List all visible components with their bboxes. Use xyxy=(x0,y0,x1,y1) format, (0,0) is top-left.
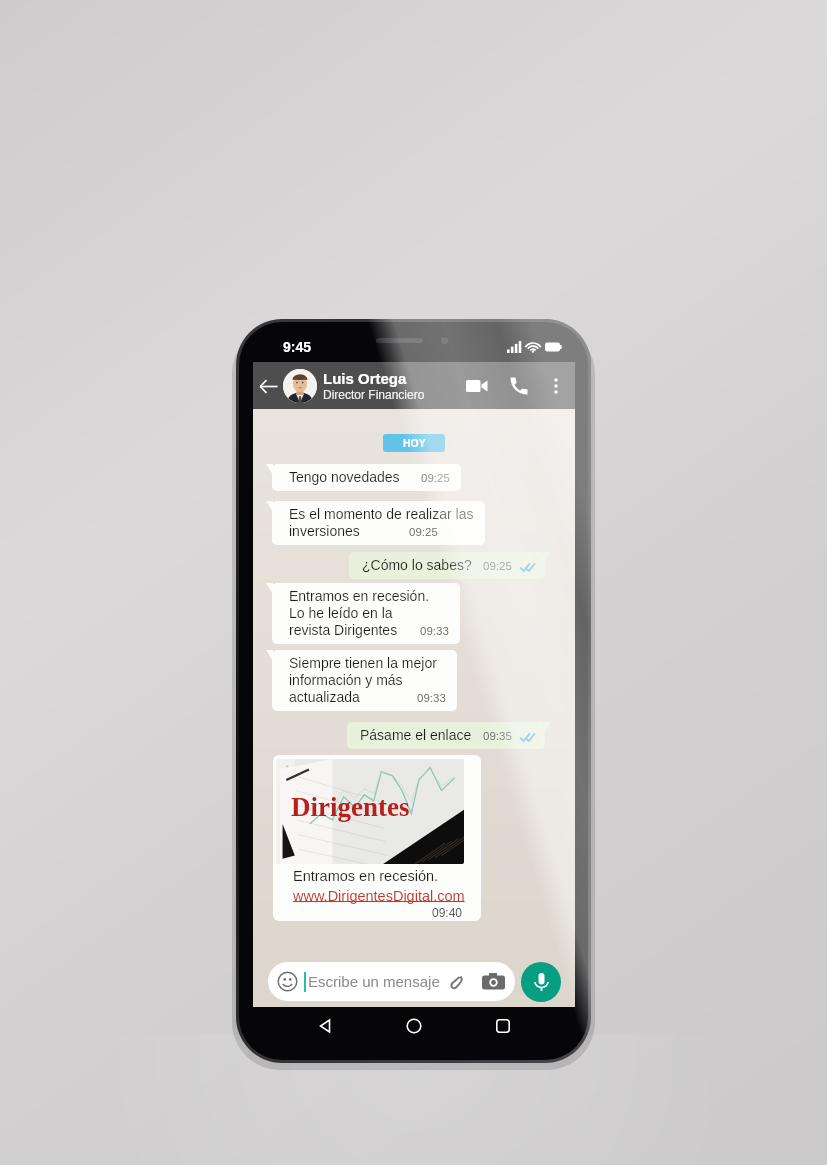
staticText: Entramos en recesión. xyxy=(289,588,430,605)
button[interactable]: HOY xyxy=(383,434,445,452)
staticText: 09:40 xyxy=(432,906,463,919)
button[interactable]: ¿Cómo lo sabes? xyxy=(349,552,545,579)
staticText: revista Dirigentes xyxy=(289,622,398,639)
staticText: 09:25 xyxy=(483,560,512,573)
button[interactable]: Camera xyxy=(481,970,505,994)
staticText: 09:35 xyxy=(483,730,512,743)
staticText: 09:33 xyxy=(420,625,449,638)
button[interactable]: Home xyxy=(398,1010,430,1042)
staticText: ¿Cómo lo sabes? xyxy=(362,557,472,574)
staticText: Siempre tienen la mejor xyxy=(289,655,437,672)
button[interactable]: Back xyxy=(310,1010,342,1042)
button[interactable]: Attach file xyxy=(445,970,469,994)
button[interactable]: Call xyxy=(505,372,533,400)
staticText: Dirigentes xyxy=(291,792,410,822)
staticText: Luis Ortega xyxy=(323,370,407,387)
staticText: Es el momento de realizar las xyxy=(289,506,474,523)
staticText: www.DirigentesDigital.com xyxy=(293,885,465,905)
button[interactable]: Dirigentes xyxy=(273,755,481,921)
button[interactable]: Pásame el enlace xyxy=(347,722,545,749)
button[interactable]: More options xyxy=(543,373,569,399)
staticText: 09:25 xyxy=(421,472,450,485)
button[interactable]: Tengo novedades xyxy=(272,464,461,491)
staticText: Entramos en recesión. xyxy=(293,866,439,885)
staticText: 09:33 xyxy=(417,692,446,705)
staticText: inversiones xyxy=(289,523,360,540)
staticText: 9:45 xyxy=(283,339,312,355)
button[interactable]: Es el momento de realizar las xyxy=(272,501,485,545)
button[interactable]: Escribe un mensaje xyxy=(268,962,515,1001)
staticText: Lo he leído en la xyxy=(289,605,393,622)
staticText: Tengo novedades xyxy=(289,469,400,486)
button[interactable]: Siempre tienen la mejor xyxy=(272,650,457,711)
button[interactable]: Video call xyxy=(463,372,491,400)
staticText: Escribe un mensaje xyxy=(308,973,440,990)
button[interactable]: Record voice message xyxy=(521,962,561,1002)
staticText: información y más xyxy=(289,672,403,689)
button[interactable]: Recent apps xyxy=(487,1010,519,1042)
staticText: Pásame el enlace xyxy=(360,727,472,744)
staticText: actualizada xyxy=(289,689,360,706)
staticText: Director Financiero xyxy=(323,387,425,402)
button[interactable]: Back xyxy=(253,366,283,406)
staticText: 09:25 xyxy=(409,526,438,539)
staticText: HOY xyxy=(403,437,426,449)
button[interactable]: Entramos en recesión. xyxy=(272,583,460,644)
